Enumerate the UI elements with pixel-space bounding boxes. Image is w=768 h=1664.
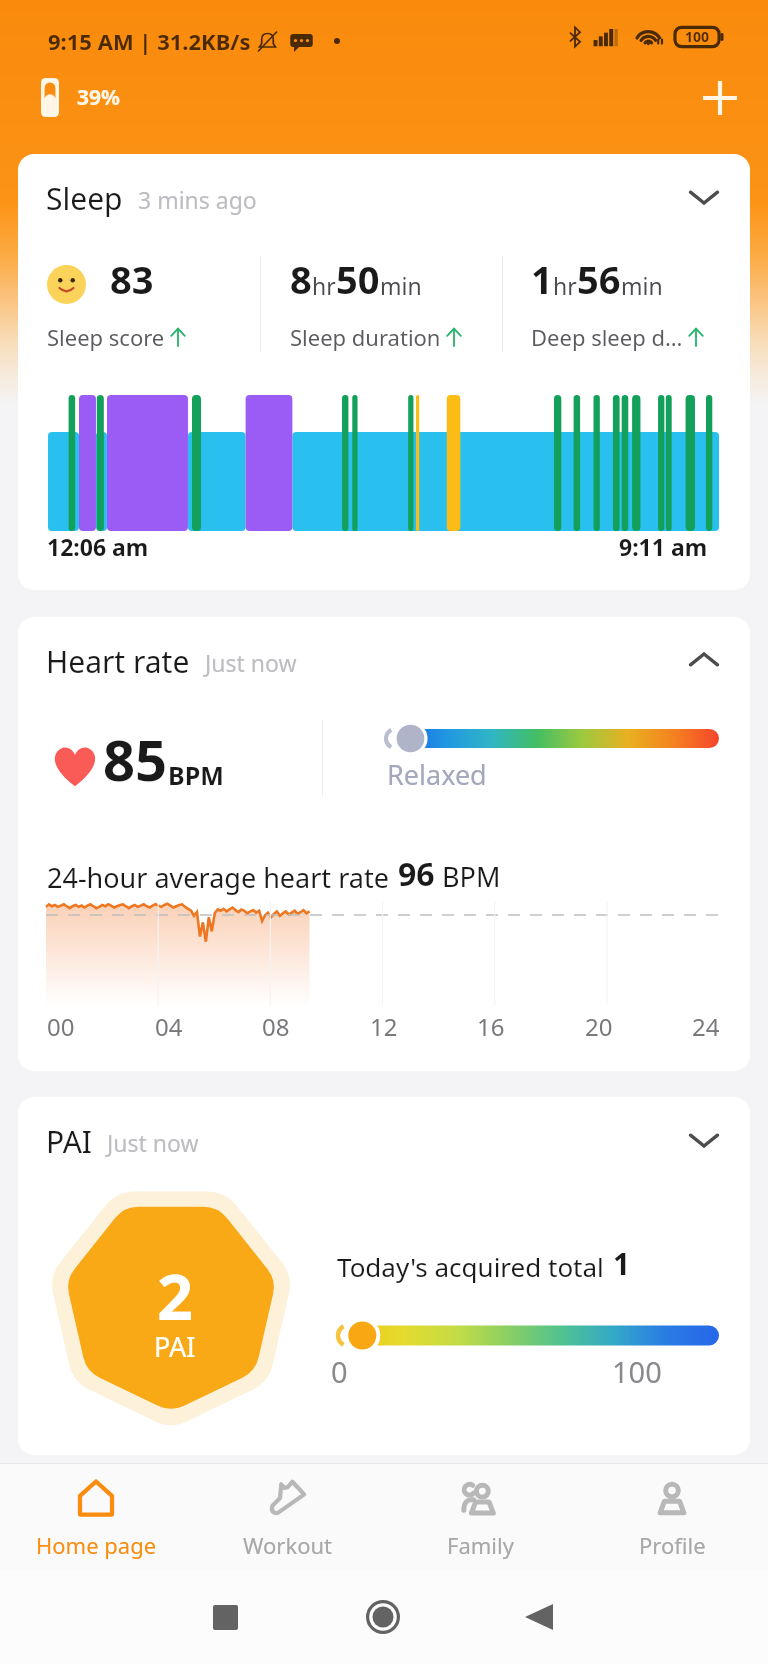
- button[interactable]: Sleep: [18, 154, 750, 590]
- staticText: 00: [47, 1010, 75, 1043]
- staticText: 0: [331, 1352, 348, 1391]
- staticText: BPM: [442, 858, 501, 895]
- button[interactable]: Home page: [0, 1464, 192, 1570]
- staticText: 9:15 AM | 31.2KB/s: [48, 26, 251, 56]
- staticText: 8: [290, 253, 312, 305]
- staticText: PAI: [46, 1121, 92, 1162]
- staticText: 96: [398, 852, 435, 896]
- staticText: PAI: [154, 1328, 196, 1365]
- staticText: Heart rate: [46, 641, 190, 682]
- button[interactable]: Recents: [199, 1591, 251, 1643]
- staticText: 56: [577, 253, 621, 305]
- staticText: Workout: [243, 1530, 333, 1560]
- staticText: 9:11 am: [619, 531, 708, 562]
- button[interactable]: Heart rate: [18, 617, 750, 1071]
- staticText: 24: [692, 1010, 720, 1043]
- staticText: 50: [336, 253, 380, 305]
- staticText: 39%: [77, 83, 120, 112]
- button[interactable]: Expand: [680, 173, 728, 221]
- staticText: Just now: [205, 647, 297, 678]
- staticText: min: [621, 270, 663, 301]
- staticText: 24-hour average heart rate: [47, 859, 389, 896]
- button[interactable]: Home: [357, 1591, 409, 1643]
- staticText: 2: [157, 1253, 194, 1339]
- staticText: Sleep duration: [290, 322, 441, 352]
- button[interactable]: 39%: [41, 78, 120, 117]
- staticText: hr: [312, 270, 336, 301]
- button[interactable]: Back: [513, 1591, 565, 1643]
- staticText: 04: [155, 1010, 183, 1043]
- staticText: Just now: [107, 1127, 199, 1158]
- staticText: Profile: [639, 1530, 706, 1560]
- staticText: BPM: [168, 758, 224, 792]
- button[interactable]: Workout: [192, 1464, 384, 1570]
- staticText: Sleep score: [47, 322, 165, 352]
- staticText: 16: [477, 1010, 505, 1043]
- staticText: 83: [110, 253, 154, 305]
- staticText: Sleep: [46, 178, 123, 219]
- staticText: 85: [103, 721, 168, 797]
- staticText: 12: [370, 1010, 398, 1043]
- staticText: Deep sleep d…: [531, 322, 683, 352]
- staticText: min: [380, 270, 422, 301]
- button[interactable]: Collapse: [680, 636, 728, 684]
- button[interactable]: Add device: [692, 70, 748, 126]
- staticText: Family: [447, 1530, 514, 1560]
- staticText: Home page: [36, 1530, 157, 1560]
- staticText: 3 mins ago: [138, 184, 257, 215]
- button[interactable]: Profile: [576, 1464, 768, 1570]
- button[interactable]: PAI: [18, 1097, 750, 1455]
- staticText: 08: [262, 1010, 290, 1043]
- staticText: 100: [612, 1352, 662, 1391]
- staticText: 20: [585, 1010, 613, 1043]
- staticText: 1: [531, 253, 553, 305]
- button[interactable]: Expand: [680, 1116, 728, 1164]
- staticText: 100: [685, 27, 710, 46]
- staticText: Today's acquired total: [337, 1249, 604, 1284]
- button[interactable]: Family: [384, 1464, 576, 1570]
- staticText: 12:06 am: [47, 531, 149, 562]
- staticText: Relaxed: [387, 756, 487, 793]
- staticText: 1: [613, 1243, 631, 1284]
- staticText: hr: [553, 270, 577, 301]
